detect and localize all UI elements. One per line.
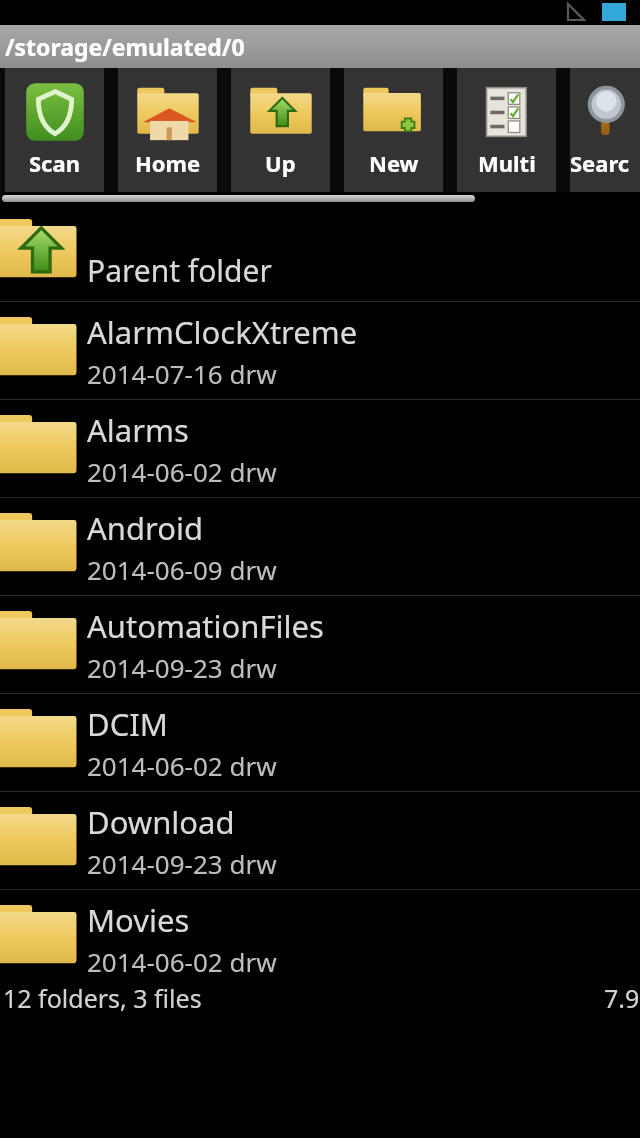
staticText: Multi <box>478 148 536 178</box>
staticText: Android <box>87 507 204 549</box>
staticText: 2014-06-09 drw <box>87 552 277 587</box>
button[interactable]: Movies <box>0 890 640 987</box>
button[interactable]: Android <box>0 498 640 595</box>
staticText: Home <box>135 148 201 178</box>
staticText: 2014-09-23 drw <box>87 650 277 685</box>
button[interactable]: AutomationFiles <box>0 596 640 693</box>
button[interactable]: Scan <box>5 68 104 192</box>
button[interactable]: AlarmClockXtreme <box>0 302 640 399</box>
staticText: AutomationFiles <box>87 605 324 647</box>
button[interactable]: Up <box>231 68 330 192</box>
staticText: 7.9 <box>604 981 640 1015</box>
staticText: 12 folders, 3 files <box>3 981 202 1015</box>
staticText: AlarmClockXtreme <box>87 311 358 353</box>
button[interactable]: Parent folder <box>0 204 640 301</box>
button[interactable]: Home <box>118 68 217 192</box>
staticText: 2014-09-23 drw <box>87 846 277 881</box>
staticText: 2014-06-02 drw <box>87 454 277 489</box>
button[interactable]: Search <box>570 68 640 192</box>
button[interactable]: Download <box>0 792 640 889</box>
staticText: Scan <box>29 148 80 178</box>
staticText: 2014-06-02 drw <box>87 944 277 979</box>
staticText: DCIM <box>87 703 168 745</box>
button[interactable]: New <box>344 68 443 192</box>
staticText: 2014-06-02 drw <box>87 748 277 783</box>
staticText: Download <box>87 801 235 843</box>
staticText: New <box>369 148 419 178</box>
staticText: Up <box>265 148 296 178</box>
staticText: Parent folder <box>87 250 272 291</box>
staticText: /storage/emulated/0 <box>5 31 245 62</box>
staticText: Movies <box>87 899 190 941</box>
button[interactable]: DCIM <box>0 694 640 791</box>
staticText: Alarms <box>87 409 189 451</box>
staticText: 2014-07-16 drw <box>87 356 277 391</box>
staticText: Search <box>570 148 640 178</box>
button[interactable]: Multi <box>457 68 556 192</box>
button[interactable]: Alarms <box>0 400 640 497</box>
